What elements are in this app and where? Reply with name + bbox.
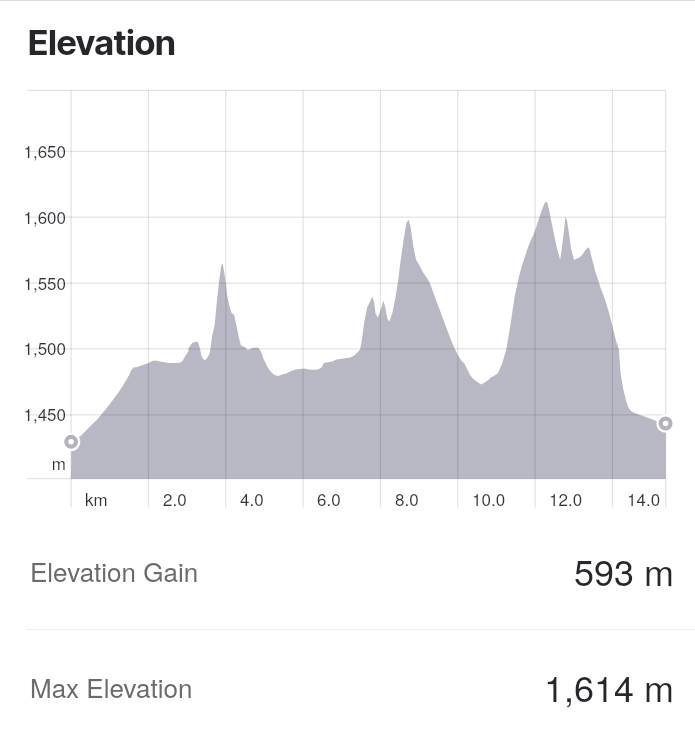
staticText: 12.0: [549, 486, 583, 510]
staticText: m: [0, 450, 66, 474]
staticText: 1,614 m: [543, 661, 674, 713]
staticText: 4.0: [240, 486, 264, 510]
staticText: 6.0: [317, 486, 341, 510]
staticText: km: [85, 486, 108, 510]
button[interactable]: Elevation Gain: [0, 520, 695, 621]
staticText: 1,450: [0, 401, 66, 425]
staticText: 8.0: [395, 486, 419, 510]
staticText: Elevation: [28, 21, 176, 63]
staticText: 1,500: [0, 335, 66, 359]
staticText: 1,650: [0, 138, 66, 162]
staticText: 593 m: [573, 545, 674, 597]
staticText: 1,550: [0, 270, 66, 294]
staticText: 10.0: [472, 486, 506, 510]
staticText: Max Elevation: [30, 668, 193, 705]
staticText: 14.0: [627, 486, 661, 510]
staticText: 1,600: [0, 204, 66, 228]
staticText: Elevation Gain: [30, 552, 199, 589]
button[interactable]: Max Elevation: [0, 636, 695, 737]
staticText: 2.0: [163, 486, 187, 510]
